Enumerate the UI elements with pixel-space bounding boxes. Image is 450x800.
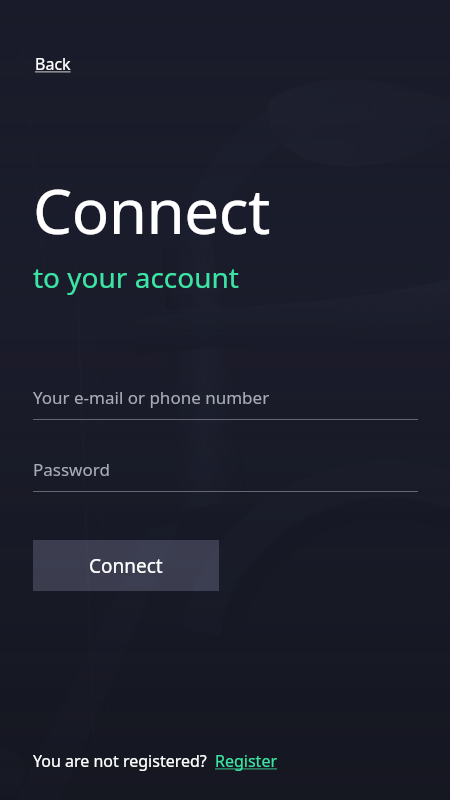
staticText: Your e-mail or phone number (33, 386, 270, 409)
button[interactable]: Register (214, 748, 279, 774)
staticText: Connect (89, 553, 163, 579)
button[interactable]: Back (33, 50, 73, 78)
button[interactable]: Password (33, 448, 418, 492)
staticText: Register (215, 750, 278, 772)
button[interactable]: Your e-mail or phone number (33, 376, 418, 420)
staticText: to your account (33, 258, 239, 296)
staticText: Password (33, 458, 110, 481)
staticText: Connect (33, 168, 270, 252)
staticText: You are not registered? (33, 750, 207, 772)
staticText: Back (35, 53, 71, 75)
button[interactable]: Connect (33, 540, 219, 591)
